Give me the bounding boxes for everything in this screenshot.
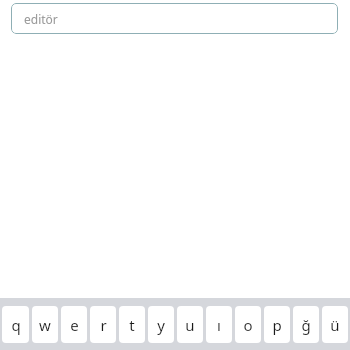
staticText: p: [272, 315, 282, 335]
button[interactable]: editör: [11, 3, 338, 34]
button[interactable]: ü: [322, 306, 348, 343]
staticText: q: [11, 315, 21, 335]
staticText: ü: [330, 315, 340, 335]
button[interactable]: q: [2, 306, 29, 343]
staticText: t: [129, 315, 135, 335]
staticText: ğ: [301, 315, 311, 335]
staticText: ı: [217, 315, 221, 335]
staticText: y: [157, 315, 165, 335]
staticText: editör: [24, 11, 58, 27]
button[interactable]: y: [148, 306, 174, 343]
button[interactable]: ı: [206, 306, 232, 343]
staticText: r: [100, 315, 107, 335]
button[interactable]: r: [90, 306, 116, 343]
button[interactable]: w: [32, 306, 58, 343]
button[interactable]: p: [264, 306, 290, 343]
button[interactable]: ğ: [293, 306, 319, 343]
staticText: u: [185, 315, 195, 335]
button[interactable]: u: [177, 306, 203, 343]
staticText: o: [243, 315, 253, 335]
staticText: e: [70, 315, 79, 335]
button[interactable]: e: [61, 306, 87, 343]
staticText: w: [39, 315, 51, 335]
button[interactable]: o: [235, 306, 261, 343]
button[interactable]: t: [119, 306, 145, 343]
